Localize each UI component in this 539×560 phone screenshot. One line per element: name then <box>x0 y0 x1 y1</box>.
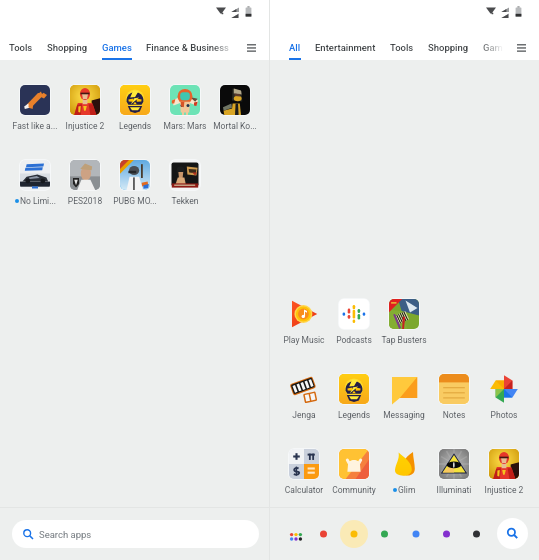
button[interactable]: Podcasts <box>329 299 379 345</box>
button[interactable]: Entertainment <box>315 42 376 60</box>
staticText: Mortal Ko... <box>210 121 260 131</box>
button[interactable]: Tekken <box>160 160 210 206</box>
staticText: Messaging <box>379 410 429 420</box>
button[interactable]: Tools <box>9 42 33 60</box>
staticText: Tap Busters <box>379 335 429 345</box>
button[interactable]: Games <box>483 42 513 60</box>
button[interactable]: Menu <box>246 43 256 53</box>
button[interactable]: Mars: Mars <box>160 85 210 131</box>
button[interactable]: Games <box>102 42 132 60</box>
button[interactable]: Tap Busters <box>379 299 429 345</box>
button[interactable]: Purple <box>437 524 457 544</box>
button[interactable]: Glim <box>379 449 429 495</box>
staticText: No Limi... <box>20 196 56 206</box>
button[interactable]: Yellow <box>344 524 364 544</box>
button[interactable]: Green <box>375 524 395 544</box>
staticText: Tekken <box>160 196 210 206</box>
button[interactable]: Tools <box>390 42 414 60</box>
button[interactable]: Play Music <box>279 299 329 345</box>
button[interactable]: Search apps <box>12 520 259 548</box>
button[interactable]: Shopping <box>47 42 88 60</box>
staticText: Photos <box>479 410 529 420</box>
button[interactable]: Finance & Business <box>146 42 229 60</box>
staticText: Jenga <box>279 410 329 420</box>
staticText: Search apps <box>39 529 92 540</box>
button[interactable]: Legends <box>110 85 160 131</box>
staticText: Legends <box>329 410 379 420</box>
staticText: Play Music <box>279 335 329 345</box>
staticText: PES2018 <box>60 196 110 206</box>
button[interactable]: Blue <box>406 524 426 544</box>
staticText: PUBG MO... <box>110 196 160 206</box>
staticText: Fast like a... <box>10 121 60 131</box>
button[interactable]: Injustice 2 <box>60 85 110 131</box>
button[interactable]: Injustice 2 <box>479 449 529 495</box>
button[interactable]: All <box>289 42 301 60</box>
button[interactable]: Mortal Ko... <box>210 85 260 131</box>
button[interactable]: Black <box>467 524 487 544</box>
button[interactable]: No Limi... <box>10 160 60 206</box>
staticText: Calculator <box>279 485 329 495</box>
button[interactable]: PES2018 <box>60 160 110 206</box>
button[interactable]: Legends <box>329 374 379 420</box>
button[interactable]: Menu <box>516 43 526 53</box>
staticText: Podcasts <box>329 335 379 345</box>
button[interactable]: Photos <box>479 374 529 420</box>
button[interactable]: Shopping <box>428 42 469 60</box>
button[interactable]: Jenga <box>279 374 329 420</box>
button[interactable]: Red <box>314 524 334 544</box>
button[interactable]: Calculator <box>279 449 329 495</box>
button[interactable]: Search <box>497 518 528 549</box>
button[interactable]: Illuminati <box>429 449 479 495</box>
button[interactable]: Community <box>329 449 379 495</box>
staticText: Glim <box>398 485 416 495</box>
staticText: Legends <box>110 121 160 131</box>
staticText: Injustice 2 <box>479 485 529 495</box>
button[interactable]: PUBG MO... <box>110 160 160 206</box>
button[interactable]: Notes <box>429 374 479 420</box>
staticText: Injustice 2 <box>60 121 110 131</box>
staticText: Notes <box>429 410 479 420</box>
staticText: Illuminati <box>429 485 479 495</box>
button[interactable]: Fast like a... <box>10 85 60 131</box>
button[interactable]: All apps <box>290 533 304 545</box>
staticText: Community <box>329 485 379 495</box>
staticText: Mars: Mars <box>160 121 210 131</box>
button[interactable]: Messaging <box>379 374 429 420</box>
